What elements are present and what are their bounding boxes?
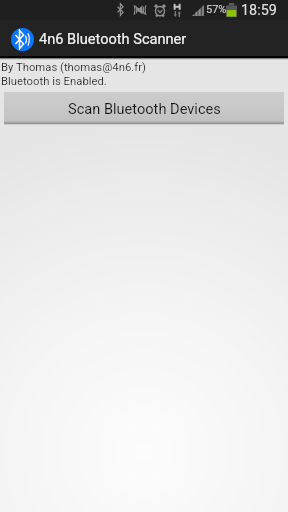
staticText: Scan Bluetooth Devices [68, 100, 221, 117]
staticText: 57% [206, 3, 227, 16]
staticText: 18:59 [241, 2, 277, 19]
button[interactable]: Scan Bluetooth Devices [4, 92, 284, 125]
staticText: By Thomas (thomas@4n6.fr) Bluetooth is E… [1, 61, 146, 88]
staticText: 4n6 Bluetooth Scanner [39, 30, 187, 47]
